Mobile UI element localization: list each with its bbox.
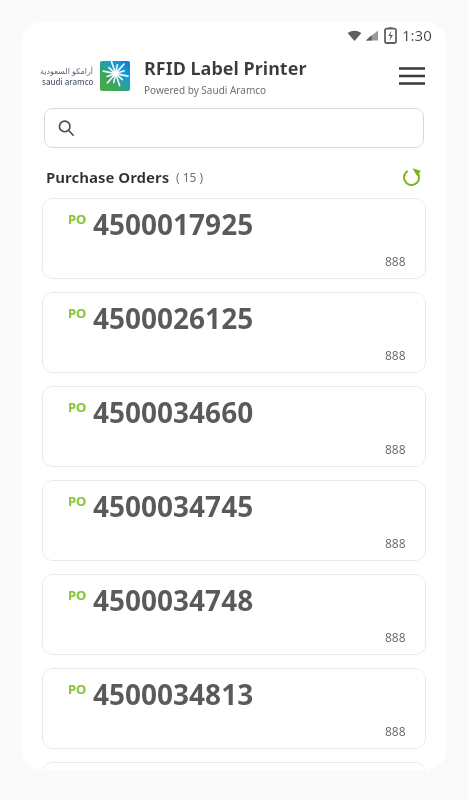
staticText: PO (68, 680, 87, 698)
staticText: 888 (385, 535, 406, 551)
staticText: PO (68, 304, 87, 322)
button[interactable]: Refresh (396, 162, 426, 192)
button[interactable]: Menu (392, 56, 432, 96)
button[interactable]: PO (42, 292, 426, 373)
staticText: RFID Label Printer (144, 56, 307, 81)
staticText: 888 (385, 723, 406, 739)
staticText: 1:30 (402, 25, 432, 45)
staticText: 4500034745 (93, 487, 254, 525)
button[interactable]: PO (42, 386, 426, 467)
staticText: 888 (385, 629, 406, 645)
button[interactable] (44, 108, 424, 148)
staticText: أرامكو السعودية (40, 65, 94, 76)
staticText: PO (68, 586, 87, 604)
staticText: 888 (385, 441, 406, 457)
staticText: 4500017925 (93, 205, 254, 243)
staticText: 4500034660 (93, 393, 254, 431)
button[interactable]: PO (42, 574, 426, 655)
staticText: 888 (385, 347, 406, 363)
staticText: saudi aramco (42, 76, 94, 87)
staticText: PO (68, 210, 87, 228)
staticText: Purchase Orders (46, 167, 170, 187)
button[interactable]: PO (42, 762, 426, 770)
button[interactable]: PO (42, 198, 426, 279)
staticText: Powered by Saudi Aramco (144, 83, 267, 97)
staticText: 888 (385, 253, 406, 269)
staticText: PO (68, 492, 87, 510)
staticText: ( 15 ) (176, 169, 204, 185)
staticText: 4500034748 (93, 581, 254, 619)
staticText: PO (68, 398, 87, 416)
staticText: 4500026125 (93, 299, 254, 337)
button[interactable]: PO (42, 480, 426, 561)
staticText: 4500034813 (93, 675, 254, 713)
button[interactable]: PO (42, 668, 426, 749)
